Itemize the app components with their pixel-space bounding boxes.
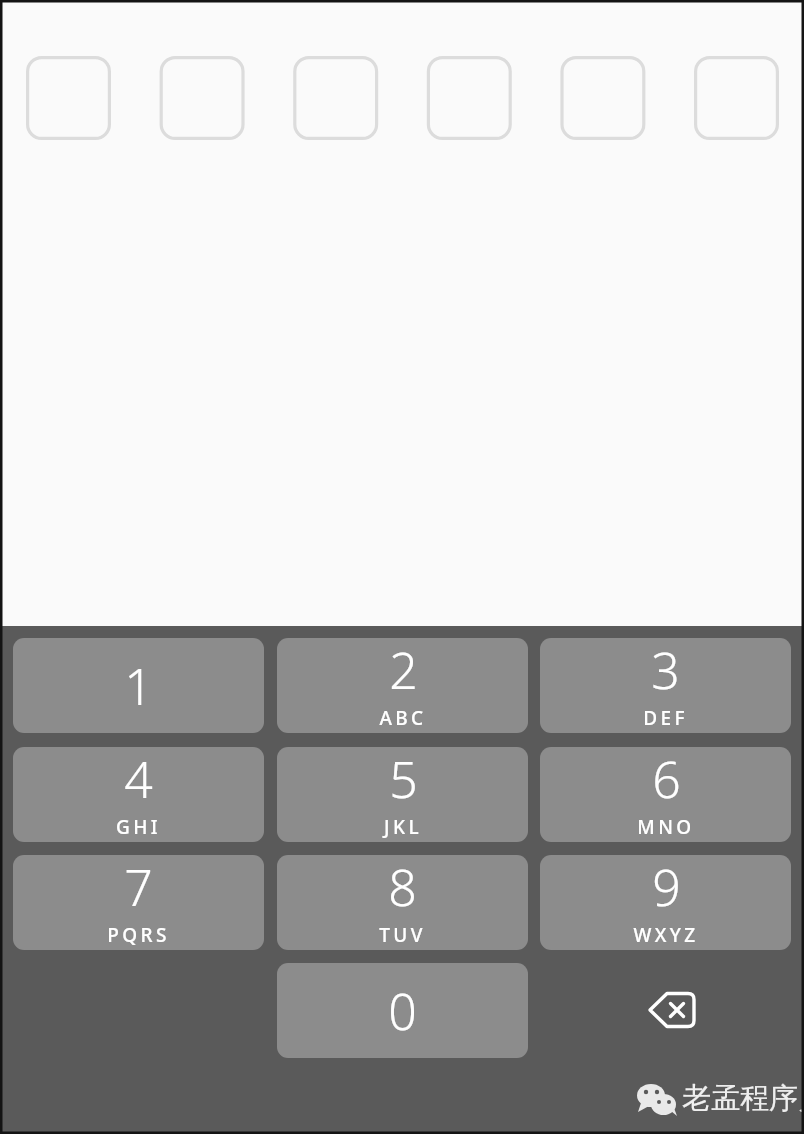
- staticText: 5: [389, 747, 418, 813]
- staticText: PQRS: [107, 922, 170, 948]
- staticText: 1: [124, 652, 153, 720]
- staticText: WXYZ: [633, 922, 699, 948]
- staticText: JKL: [384, 814, 422, 840]
- button[interactable]: 0: [277, 963, 528, 1058]
- button[interactable]: 1: [13, 638, 264, 733]
- staticText: 7: [124, 855, 153, 921]
- button[interactable]: 4: [13, 747, 264, 842]
- staticText: 8: [388, 855, 417, 921]
- staticText: DEF: [643, 705, 688, 731]
- button[interactable]: 3: [540, 638, 791, 733]
- staticText: ABC: [379, 705, 427, 731]
- button[interactable]: Delete: [600, 963, 745, 1058]
- button[interactable]: 2: [277, 638, 528, 733]
- staticText: 老孟程序员: [682, 1080, 804, 1117]
- staticText: 0: [388, 977, 417, 1045]
- button[interactable]: 9: [540, 855, 791, 950]
- button[interactable]: 7: [13, 855, 264, 950]
- staticText: GHI: [116, 814, 161, 840]
- staticText: 3: [651, 638, 680, 704]
- staticText: MNO: [637, 814, 695, 840]
- staticText: 9: [652, 855, 681, 921]
- staticText: TUV: [379, 922, 426, 948]
- staticText: 4: [124, 747, 153, 813]
- staticText: 2: [389, 638, 418, 704]
- button[interactable]: 8: [277, 855, 528, 950]
- staticText: 6: [652, 747, 681, 813]
- button[interactable]: 6: [540, 747, 791, 842]
- button[interactable]: 5: [277, 747, 528, 842]
